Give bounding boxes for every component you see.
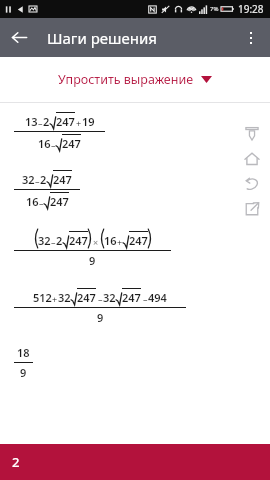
staticText: 512 bbox=[33, 290, 52, 305]
button[interactable]: Сохранить bbox=[239, 121, 264, 146]
staticText: 16 bbox=[38, 136, 51, 151]
staticText: 2 bbox=[40, 172, 47, 187]
button[interactable]: 2 bbox=[0, 444, 270, 480]
staticText: – bbox=[51, 139, 56, 151]
staticText: 247 bbox=[77, 290, 96, 305]
staticText: 32 bbox=[38, 233, 51, 248]
staticText: – bbox=[38, 117, 43, 129]
staticText: 18 bbox=[17, 345, 30, 360]
staticText: 247 bbox=[69, 233, 88, 248]
staticText: 16 bbox=[26, 194, 39, 209]
staticText: 32 bbox=[22, 172, 35, 187]
staticText: 19 bbox=[82, 114, 95, 129]
staticText: 19:28 bbox=[238, 2, 264, 16]
button[interactable]: Поделиться bbox=[239, 196, 264, 221]
staticText: + bbox=[117, 236, 123, 248]
staticText: 2 bbox=[43, 114, 50, 129]
staticText: 16 bbox=[104, 233, 117, 248]
staticText: 2 bbox=[56, 233, 63, 248]
staticText: 247 bbox=[53, 172, 72, 187]
staticText: – bbox=[143, 293, 148, 305]
staticText: + bbox=[52, 293, 58, 305]
staticText: 247 bbox=[129, 233, 148, 248]
staticText: 32 bbox=[58, 290, 71, 305]
staticText: Упростить выражение bbox=[58, 71, 194, 88]
staticText: + bbox=[76, 117, 82, 129]
button[interactable]: Отменить bbox=[239, 171, 264, 196]
staticText: 32 bbox=[103, 290, 116, 305]
staticText: 9 bbox=[89, 253, 96, 268]
staticText: 247 bbox=[56, 114, 75, 129]
staticText: – bbox=[51, 236, 56, 248]
button[interactable]: Домой bbox=[239, 146, 264, 171]
staticText: Шаги решения bbox=[47, 28, 157, 48]
button[interactable]: Упростить выражение bbox=[52, 67, 218, 92]
button[interactable]: Назад bbox=[0, 18, 39, 57]
staticText: 247 bbox=[50, 194, 69, 209]
staticText: – bbox=[39, 197, 44, 209]
staticText: × bbox=[93, 236, 99, 248]
staticText: 247 bbox=[122, 290, 141, 305]
staticText: – bbox=[98, 293, 103, 305]
staticText: 9 bbox=[97, 310, 104, 325]
staticText: 13 bbox=[25, 114, 38, 129]
staticText: – bbox=[35, 175, 40, 187]
staticText: 7% bbox=[210, 5, 219, 13]
staticText: 247 bbox=[62, 136, 81, 151]
button[interactable]: Ещё bbox=[231, 18, 270, 57]
staticText: 9 bbox=[20, 365, 27, 380]
staticText: 2 bbox=[12, 453, 20, 471]
staticText: 494 bbox=[148, 290, 167, 305]
